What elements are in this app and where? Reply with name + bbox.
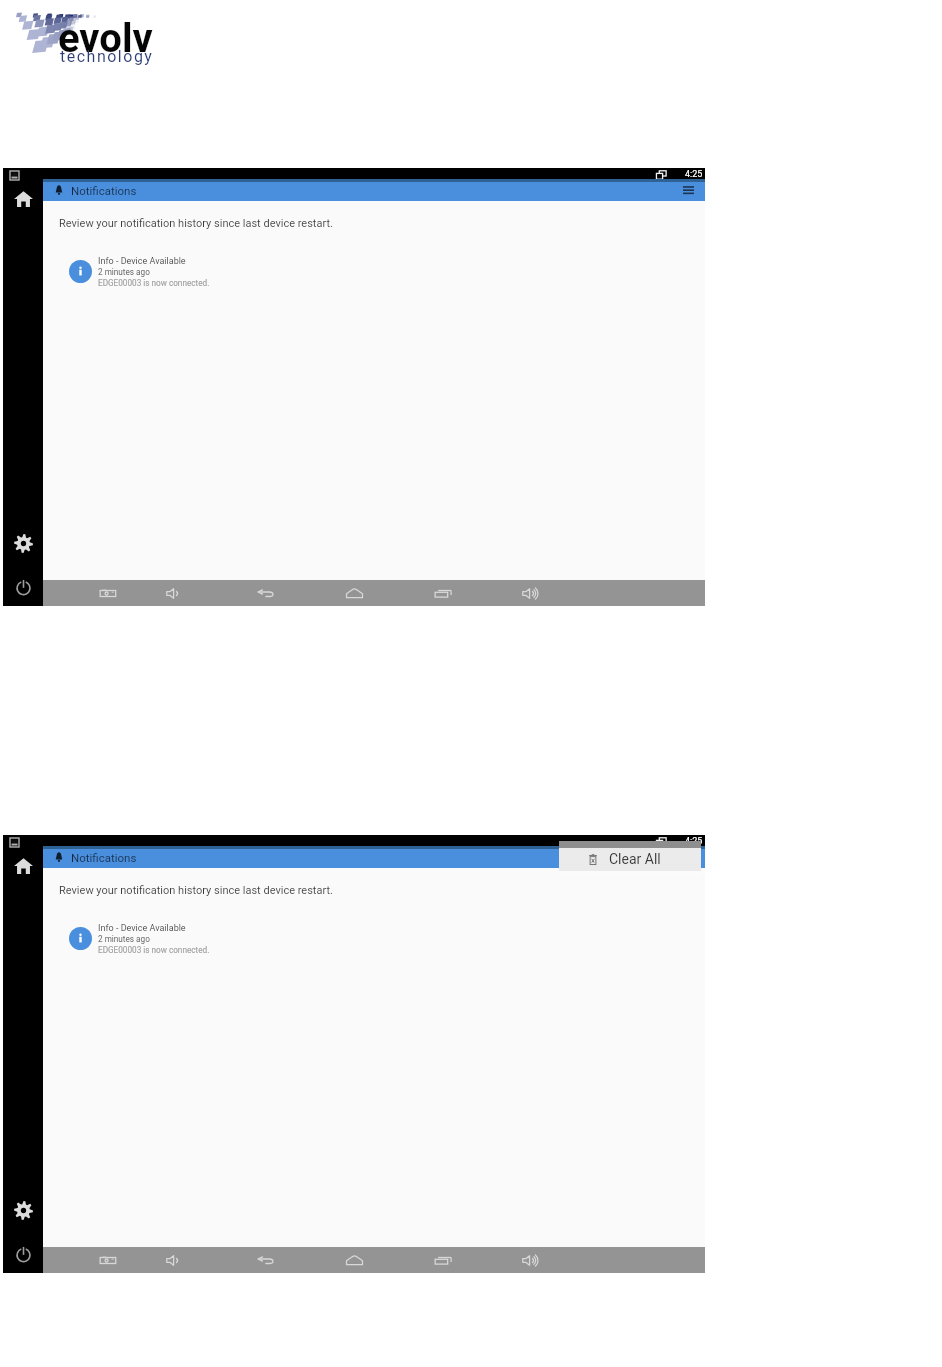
staticText: Review your notification history since l… [59, 217, 333, 230]
staticText: EDGE00003 is now connected. [98, 945, 210, 955]
staticText: 2 minutes ago [98, 934, 150, 944]
button[interactable]: Home [9, 852, 37, 880]
staticText: technology [60, 47, 154, 66]
button[interactable]: Home [9, 185, 37, 213]
button[interactable]: Back [249, 580, 281, 606]
button[interactable]: Settings [9, 529, 37, 557]
button[interactable]: Clear All [559, 848, 701, 871]
button[interactable]: Info - Device Available [65, 253, 355, 289]
button[interactable]: Power [9, 1240, 37, 1268]
staticText: evolv [58, 15, 153, 62]
button[interactable]: Home [338, 1247, 370, 1273]
button[interactable]: Volume up [515, 580, 547, 606]
staticText: 2 minutes ago [98, 267, 150, 277]
staticText: Review your notification history since l… [59, 884, 333, 897]
button[interactable]: Recents [427, 580, 459, 606]
staticText: Info - Device Available [98, 923, 186, 934]
button[interactable]: Home [338, 580, 370, 606]
staticText: Clear All [609, 851, 661, 867]
button[interactable]: Recents [427, 1247, 459, 1273]
staticText: EDGE00003 is now connected. [98, 278, 210, 288]
staticText: 4:25 [685, 836, 703, 847]
button[interactable]: Volume down [159, 1247, 191, 1273]
staticText: 4:25 [685, 169, 703, 180]
staticText: Notifications [71, 184, 137, 197]
button[interactable]: Menu [673, 179, 705, 201]
button[interactable]: Screenshot [92, 1247, 124, 1273]
staticText: Info - Device Available [98, 256, 186, 267]
button[interactable]: Volume up [515, 1247, 547, 1273]
button[interactable]: Settings [9, 1196, 37, 1224]
button[interactable]: Menu [673, 846, 705, 868]
button[interactable]: Info - Device Available [65, 920, 355, 956]
button[interactable]: Back [249, 1247, 281, 1273]
button[interactable]: Volume down [159, 580, 191, 606]
staticText: Notifications [71, 851, 137, 864]
button[interactable]: Screenshot [92, 580, 124, 606]
button[interactable]: Power [9, 573, 37, 601]
